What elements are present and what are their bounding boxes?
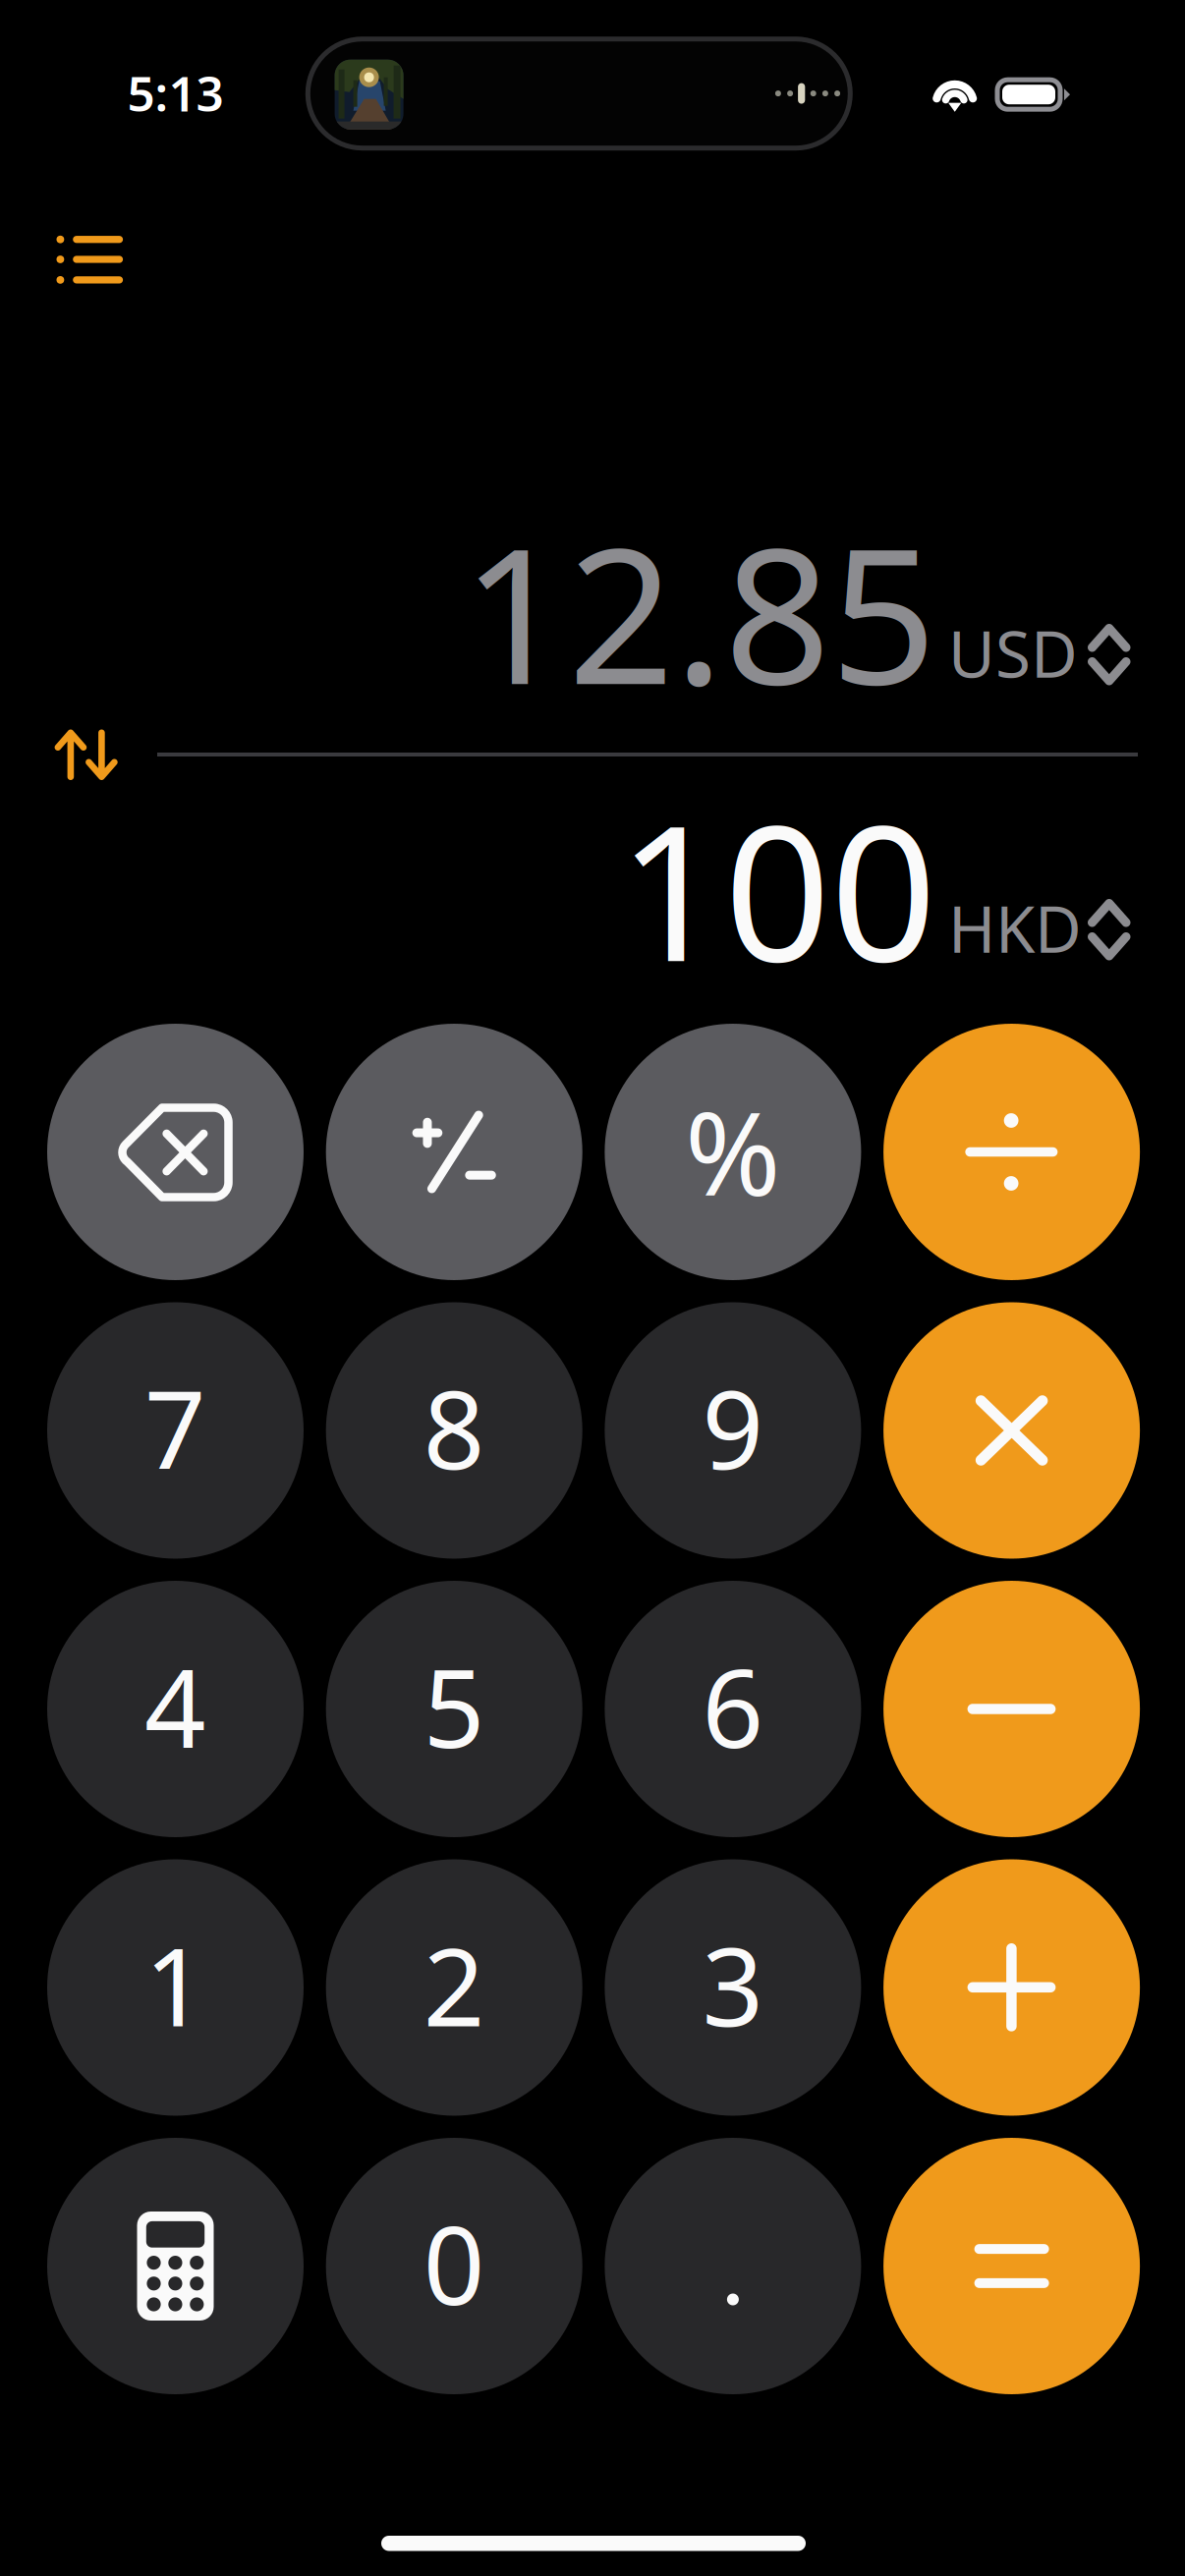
staticText: 9	[702, 1356, 764, 1499]
button[interactable]: Decimal point	[605, 2138, 861, 2394]
staticText: 6	[702, 1635, 764, 1777]
button[interactable]: 5	[326, 1581, 582, 1837]
staticText: 100	[618, 765, 936, 1012]
button[interactable]: History	[5, 185, 113, 293]
button[interactable]: Plus	[883, 1859, 1140, 2116]
button[interactable]: 2	[326, 1859, 582, 2116]
staticText: 4	[144, 1635, 206, 1777]
button[interactable]: Delete	[47, 1024, 304, 1280]
staticText: 8	[423, 1356, 485, 1499]
button[interactable]: 7	[47, 1302, 304, 1559]
button[interactable]: 9	[605, 1302, 861, 1559]
staticText: 5:13	[127, 60, 224, 125]
button[interactable]: Multiply	[883, 1302, 1140, 1559]
button[interactable]: Divide	[883, 1024, 1140, 1280]
staticText: 5	[423, 1635, 485, 1777]
staticText: 12.85	[462, 488, 936, 735]
staticText: 7	[144, 1356, 206, 1499]
staticText: HKD	[948, 885, 1082, 970]
button[interactable]: 0	[326, 2138, 582, 2394]
button[interactable]: Equals	[883, 2138, 1140, 2394]
button[interactable]: Calculator	[47, 2138, 304, 2394]
button[interactable]: Plus minus	[326, 1024, 582, 1280]
button[interactable]: 6	[605, 1581, 861, 1837]
button[interactable]: 3	[605, 1859, 861, 2116]
staticText: USD	[948, 610, 1078, 695]
button[interactable]: Change currency: HKD	[931, 866, 1148, 989]
button[interactable]: Minus	[883, 1581, 1140, 1837]
staticText: 1	[144, 1913, 206, 2056]
staticText: %	[685, 1074, 781, 1227]
button[interactable]: Percent	[605, 1024, 861, 1280]
staticText: 3	[702, 1913, 764, 2056]
staticText: 0	[423, 2192, 485, 2334]
button[interactable]: 4	[47, 1581, 304, 1837]
staticText: 2	[423, 1913, 485, 2056]
button[interactable]: 8	[326, 1302, 582, 1559]
button[interactable]: Swap currencies	[14, 702, 116, 805]
button[interactable]: Change currency: USD	[931, 590, 1148, 714]
button[interactable]: 1	[47, 1859, 304, 2116]
